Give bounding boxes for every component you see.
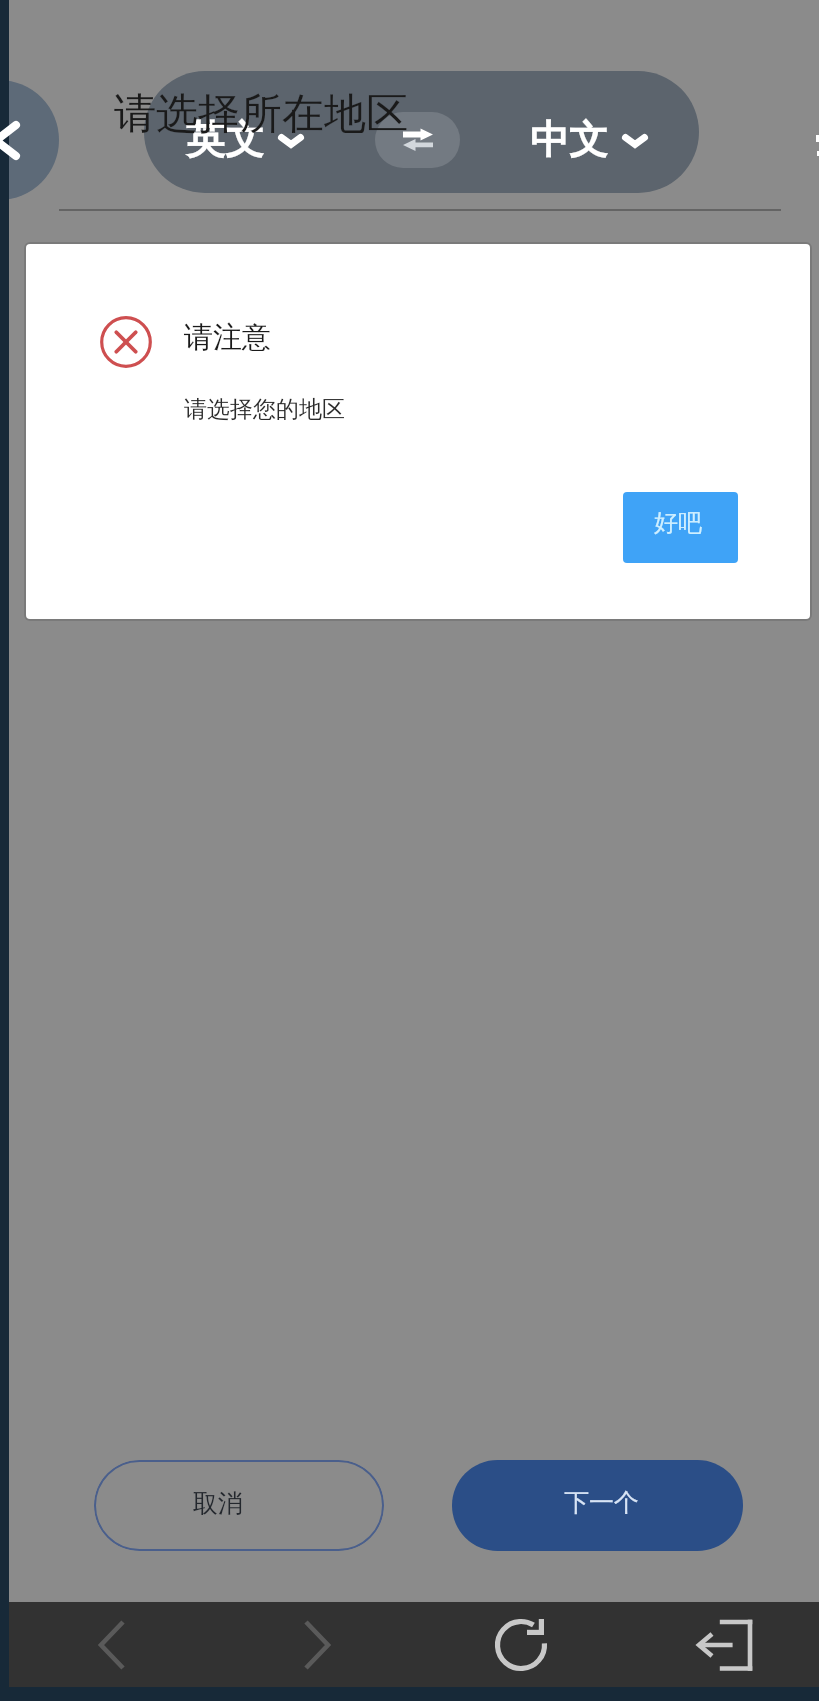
button[interactable]: Back [9,1602,214,1688]
button[interactable]: Refresh [418,1602,623,1688]
staticText: 英文 [186,115,264,164]
staticText: 请注意 [184,319,271,356]
button[interactable]: 中文 [499,78,677,193]
staticText: 好吧 [654,508,702,538]
button[interactable]: Forward [214,1602,419,1688]
button[interactable]: Back [0,80,59,200]
staticText: 下一个 [564,1487,639,1518]
staticText: 请选择所在地区 [114,88,408,141]
button[interactable]: Exit [623,1602,819,1688]
button[interactable]: 好吧 [623,492,738,563]
button[interactable]: 取消 [94,1460,384,1551]
button[interactable]: 英文 [154,78,334,193]
staticText: 请选择您的地区 [184,395,345,424]
staticText: 中文 [530,115,608,164]
button[interactable]: 下一个 [452,1460,743,1551]
staticText: 取消 [193,1488,243,1519]
button[interactable]: Swap languages [375,112,460,168]
